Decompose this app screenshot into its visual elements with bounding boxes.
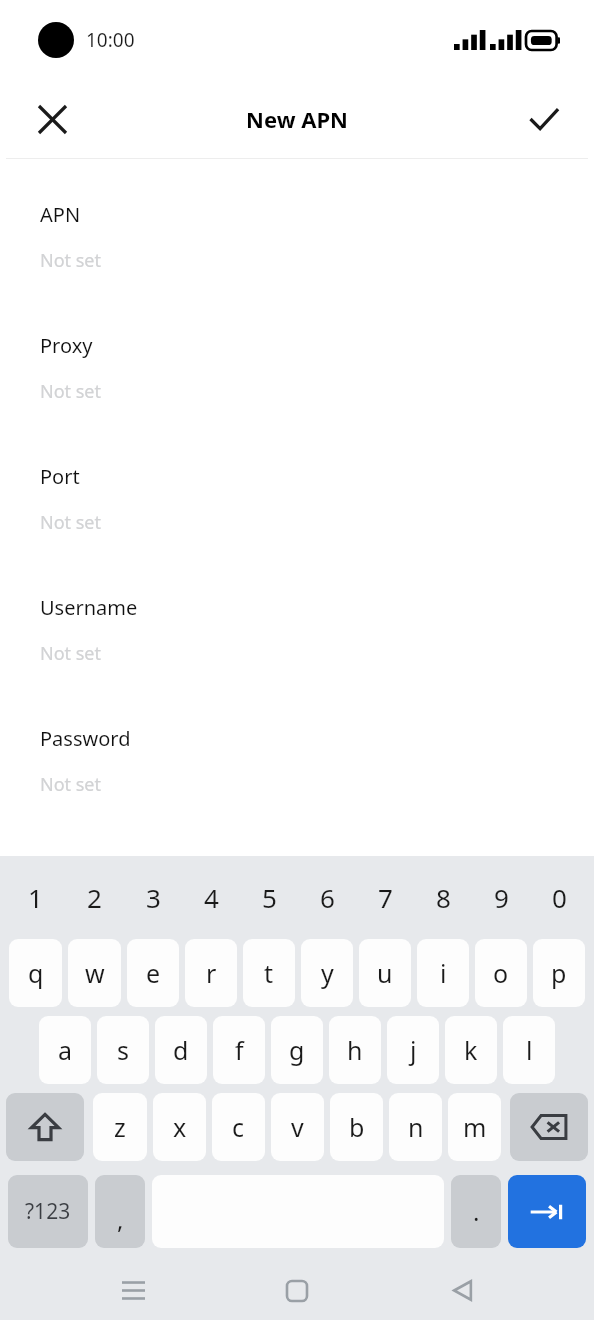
button[interactable]: Backspace: [510, 1093, 588, 1161]
staticText: r: [206, 956, 217, 990]
button[interactable]: a: [39, 1016, 91, 1084]
staticText: e: [146, 956, 161, 990]
button[interactable]: 3: [124, 856, 182, 939]
staticText: 7: [378, 880, 393, 915]
staticText: APN: [40, 201, 81, 228]
button[interactable]: j: [387, 1016, 439, 1084]
staticText: p: [551, 956, 567, 990]
button[interactable]: z: [93, 1093, 147, 1161]
button[interactable]: Shift: [6, 1093, 84, 1161]
staticText: l: [526, 1033, 533, 1067]
staticText: f: [235, 1033, 244, 1067]
button[interactable]: r: [185, 939, 237, 1007]
button[interactable]: .: [451, 1175, 501, 1248]
staticText: z: [114, 1110, 126, 1144]
button[interactable]: q: [9, 939, 62, 1007]
staticText: g: [289, 1033, 305, 1067]
button[interactable]: v: [271, 1093, 324, 1161]
staticText: 9: [494, 880, 509, 915]
button[interactable]: Username: [0, 594, 594, 725]
button[interactable]: l: [503, 1016, 555, 1084]
staticText: ,: [117, 1203, 124, 1236]
button[interactable]: 4: [182, 856, 240, 939]
staticText: u: [377, 956, 393, 990]
staticText: n: [408, 1110, 424, 1144]
staticText: 6: [320, 880, 335, 915]
button[interactable]: x: [153, 1093, 206, 1161]
staticText: Username: [40, 594, 138, 621]
button[interactable]: 5: [240, 856, 298, 939]
staticText: d: [173, 1033, 189, 1067]
button[interactable]: 9: [472, 856, 530, 939]
staticText: o: [493, 956, 509, 990]
staticText: Proxy: [40, 332, 93, 359]
staticText: v: [291, 1110, 304, 1144]
button[interactable]: APN: [0, 201, 594, 332]
button[interactable]: Port: [0, 463, 594, 594]
staticText: New APN: [246, 104, 348, 134]
button[interactable]: Save: [516, 91, 572, 147]
staticText: k: [464, 1033, 478, 1067]
staticText: b: [349, 1110, 365, 1144]
staticText: y: [321, 956, 334, 990]
staticText: x: [173, 1110, 187, 1144]
button[interactable]: s: [97, 1016, 149, 1084]
button[interactable]: 7: [356, 856, 414, 939]
staticText: 5: [262, 880, 277, 915]
button[interactable]: Proxy: [0, 332, 594, 463]
button[interactable]: Recents: [101, 1261, 165, 1320]
button[interactable]: n: [389, 1093, 442, 1161]
button[interactable]: ,: [95, 1175, 145, 1248]
button[interactable]: m: [448, 1093, 501, 1161]
staticText: 8: [436, 880, 451, 915]
button[interactable]: 0: [530, 856, 588, 939]
button[interactable]: ?123: [8, 1175, 88, 1248]
button[interactable]: Password: [0, 725, 594, 856]
button[interactable]: o: [475, 939, 527, 1007]
staticText: i: [440, 956, 447, 990]
staticText: 0: [552, 880, 567, 915]
staticText: 2: [87, 880, 102, 915]
button[interactable]: Home: [265, 1261, 329, 1320]
button[interactable]: p: [533, 939, 585, 1007]
button[interactable]: t: [243, 939, 295, 1007]
button[interactable]: w: [68, 939, 121, 1007]
staticText: t: [264, 956, 274, 990]
staticText: w: [85, 956, 105, 990]
button[interactable]: k: [445, 1016, 497, 1084]
staticText: m: [463, 1110, 487, 1144]
staticText: Password: [40, 725, 131, 752]
staticText: Not set: [40, 772, 102, 797]
staticText: q: [28, 956, 44, 990]
staticText: j: [410, 1033, 417, 1067]
button[interactable]: Close: [24, 91, 80, 147]
staticText: 1: [28, 880, 43, 915]
button[interactable]: 6: [298, 856, 356, 939]
button[interactable]: d: [155, 1016, 207, 1084]
staticText: 4: [204, 880, 219, 915]
button[interactable]: y: [301, 939, 353, 1007]
staticText: ?123: [25, 1197, 71, 1226]
button[interactable]: 2: [65, 856, 124, 939]
button[interactable]: c: [212, 1093, 265, 1161]
staticText: Port: [40, 463, 80, 490]
button[interactable]: Back: [430, 1261, 494, 1320]
staticText: .: [473, 1195, 480, 1228]
staticText: s: [117, 1033, 129, 1067]
button[interactable]: f: [213, 1016, 265, 1084]
button[interactable]: 1: [6, 856, 65, 939]
staticText: Not set: [40, 248, 102, 273]
button[interactable]: Next: [508, 1175, 586, 1248]
staticText: h: [347, 1033, 363, 1067]
staticText: a: [58, 1033, 73, 1067]
button[interactable]: b: [330, 1093, 383, 1161]
button[interactable]: e: [127, 939, 179, 1007]
button[interactable]: u: [359, 939, 411, 1007]
button[interactable]: h: [329, 1016, 381, 1084]
button[interactable]: 8: [414, 856, 472, 939]
button[interactable]: g: [271, 1016, 323, 1084]
staticText: Not set: [40, 641, 102, 666]
staticText: Not set: [40, 510, 102, 535]
button[interactable]: i: [417, 939, 469, 1007]
